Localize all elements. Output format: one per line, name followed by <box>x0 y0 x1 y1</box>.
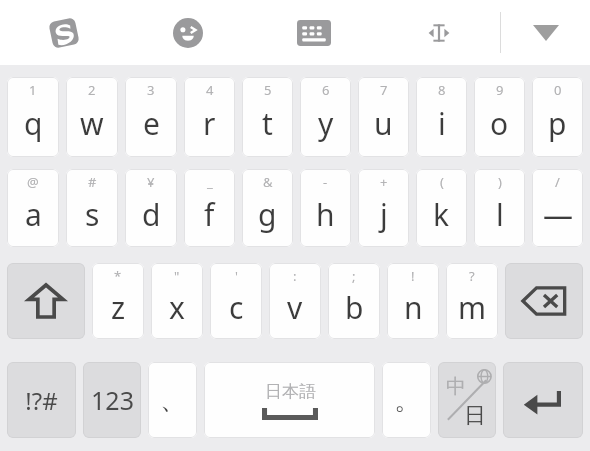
staticText: 日 <box>464 402 486 430</box>
button[interactable]: 0 <box>532 77 583 157</box>
button[interactable]: 7 <box>358 77 409 157</box>
staticText: u <box>374 103 393 144</box>
staticText: 日本語 <box>265 381 316 402</box>
button[interactable]: Keyboard layout <box>288 0 340 65</box>
staticText: t <box>262 103 273 144</box>
staticText: h <box>316 194 335 235</box>
button[interactable]: 8 <box>416 77 467 157</box>
button[interactable]: Hide keyboard <box>520 0 572 65</box>
staticText: ( <box>440 173 444 191</box>
button[interactable]: Space <box>204 362 375 438</box>
staticText: 4 <box>206 81 214 99</box>
staticText: o <box>490 103 509 144</box>
staticText: ) <box>498 173 502 191</box>
button[interactable]: " <box>151 263 203 339</box>
staticText: q <box>24 103 43 144</box>
staticText: 6 <box>322 81 330 99</box>
button[interactable]: 6 <box>300 77 351 157</box>
button[interactable]: 4 <box>184 77 235 157</box>
button[interactable]: # <box>66 169 118 247</box>
staticText: !?# <box>25 384 58 417</box>
staticText: 2 <box>88 81 96 99</box>
staticText: c <box>229 287 244 328</box>
staticText: y <box>318 103 334 144</box>
staticText: ¥ <box>147 173 155 191</box>
staticText: n <box>404 287 423 328</box>
staticText: j <box>380 194 388 235</box>
staticText: z <box>111 287 126 328</box>
staticText: d <box>142 194 161 235</box>
staticText: p <box>548 103 567 144</box>
button[interactable]: Move cursor <box>413 0 465 65</box>
button[interactable]: * <box>92 263 144 339</box>
staticText: : <box>293 267 297 285</box>
staticText: 7 <box>380 81 388 99</box>
staticText: 中 <box>446 374 466 399</box>
staticText: ! <box>411 267 415 285</box>
staticText: 123 <box>91 383 134 417</box>
staticText: 5 <box>264 81 272 99</box>
staticText: r <box>203 103 216 144</box>
button[interactable]: 9 <box>474 77 525 157</box>
button[interactable]: ' <box>210 263 262 339</box>
button[interactable]: : <box>269 263 321 339</box>
staticText: f <box>204 194 215 235</box>
button[interactable]: Sogou input <box>38 0 90 65</box>
staticText: & <box>263 173 273 191</box>
staticText: * <box>114 267 122 285</box>
staticText: x <box>169 287 185 328</box>
staticText: a <box>25 194 42 235</box>
button[interactable]: _ <box>184 169 235 247</box>
staticText: b <box>345 287 364 328</box>
button[interactable]: ( <box>416 169 467 247</box>
staticText: — <box>543 194 573 235</box>
button[interactable]: 。 <box>382 362 431 438</box>
staticText: - <box>323 173 328 191</box>
staticText: g <box>258 194 277 235</box>
button[interactable]: 、 <box>148 362 197 438</box>
button[interactable]: Enter <box>503 362 583 438</box>
button[interactable]: Backspace <box>505 263 583 339</box>
staticText: l <box>496 194 504 235</box>
button[interactable]: - <box>300 169 351 247</box>
staticText: / <box>555 173 560 191</box>
staticText: k <box>433 194 450 235</box>
staticText: 。 <box>394 384 420 417</box>
button[interactable]: 3 <box>125 77 177 157</box>
staticText: 1 <box>29 81 37 99</box>
button[interactable]: ) <box>474 169 525 247</box>
staticText: 0 <box>554 81 562 99</box>
staticText: s <box>85 194 100 235</box>
button[interactable]: & <box>242 169 293 247</box>
button[interactable]: 123 <box>83 362 141 438</box>
button[interactable]: Switch language <box>438 362 496 438</box>
staticText: 3 <box>147 81 155 99</box>
button[interactable]: @ <box>7 169 59 247</box>
staticText: 8 <box>438 81 446 99</box>
staticText: # <box>88 173 97 191</box>
button[interactable]: Shift <box>7 263 85 339</box>
staticText: 、 <box>160 384 186 417</box>
staticText: ? <box>469 267 475 285</box>
button[interactable]: 1 <box>7 77 59 157</box>
button[interactable]: ? <box>446 263 498 339</box>
button[interactable]: + <box>358 169 409 247</box>
staticText: + <box>380 173 388 191</box>
staticText: i <box>438 103 446 144</box>
button[interactable]: ¥ <box>125 169 177 247</box>
button[interactable]: Emoji <box>162 0 214 65</box>
button[interactable]: ! <box>387 263 439 339</box>
button[interactable]: / <box>532 169 583 247</box>
button[interactable]: 2 <box>66 77 118 157</box>
staticText: @ <box>27 173 39 191</box>
staticText: " <box>174 267 180 285</box>
button[interactable]: !?# <box>7 362 76 438</box>
staticText: _ <box>207 173 213 191</box>
button[interactable]: ; <box>328 263 380 339</box>
staticText: e <box>143 103 160 144</box>
staticText: 9 <box>496 81 504 99</box>
button[interactable]: 5 <box>242 77 293 157</box>
staticText: ' <box>235 267 238 285</box>
staticText: m <box>458 287 487 328</box>
staticText: ; <box>352 267 356 285</box>
